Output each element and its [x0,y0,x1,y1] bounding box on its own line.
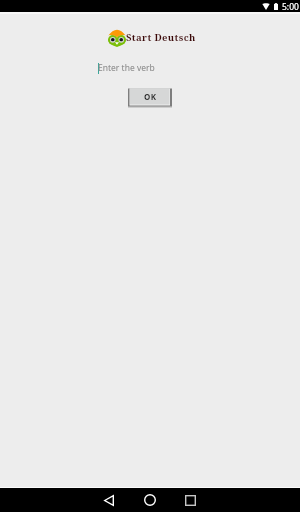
staticText: OK [144,91,157,102]
button[interactable]: Enter the verb [90,56,210,78]
staticText: 5:00 [282,1,299,13]
staticText: Enter the verb [98,62,155,74]
button[interactable]: OK [128,88,172,108]
button[interactable]: Home [138,488,162,512]
button[interactable]: Recent apps [178,488,202,512]
staticText: Start Deutsch [126,31,196,44]
button[interactable]: Back [97,488,121,512]
